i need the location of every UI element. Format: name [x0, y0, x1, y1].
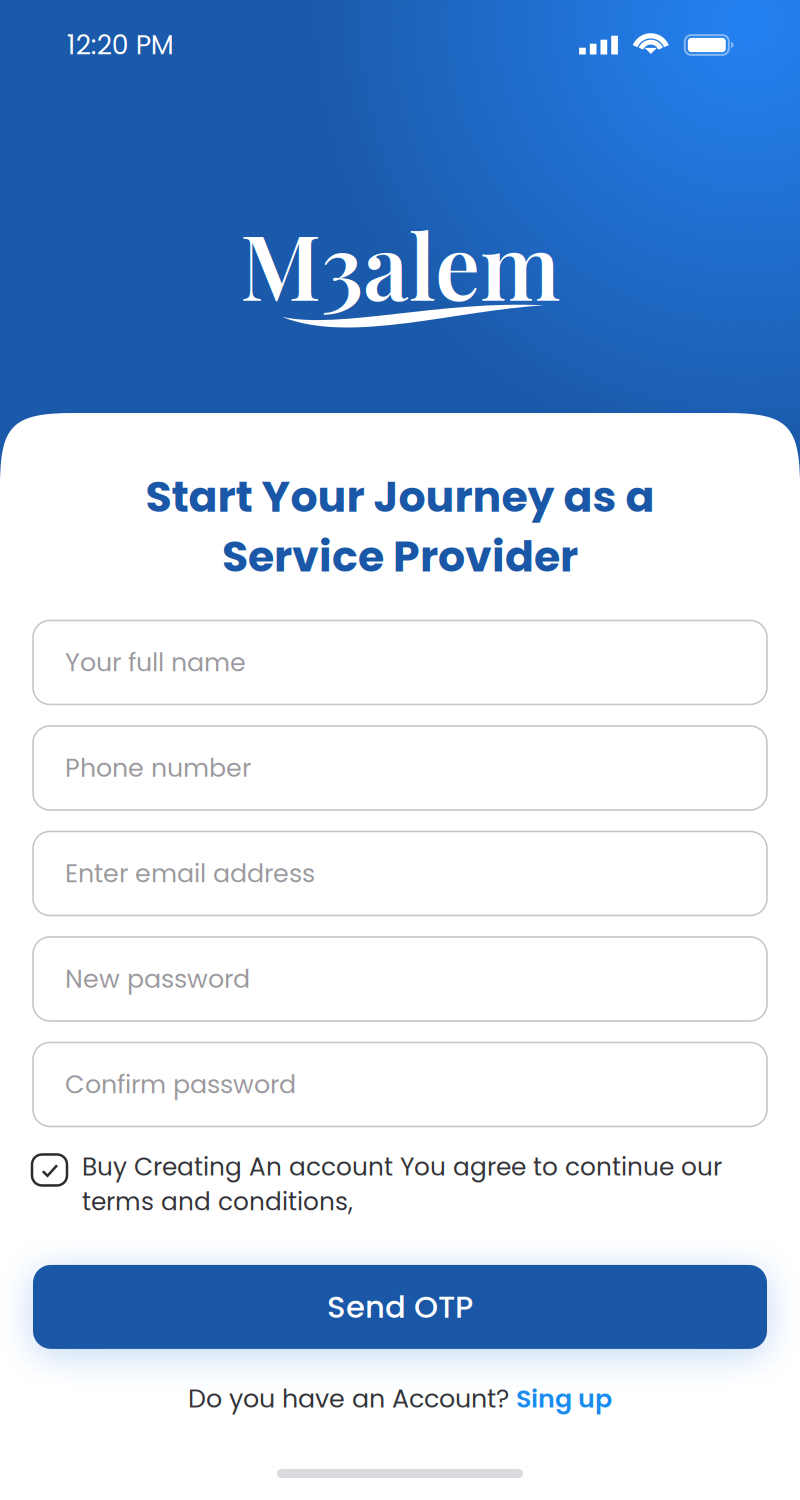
staticText: Enter email address [65, 856, 315, 891]
staticText: New password [65, 961, 250, 997]
button[interactable]: Phone number [33, 726, 767, 810]
staticText: Buy Creating An account You agree to con… [82, 1149, 722, 1219]
staticText: Phone number [65, 750, 251, 786]
button[interactable]: Sing up [516, 1381, 612, 1416]
staticText: Start Your Journey as a [145, 467, 654, 527]
button[interactable]: Buy Creating An account You agree to con… [0, 1149, 800, 1219]
staticText: Confirm password [65, 1067, 296, 1102]
staticText: 12:20 PM [67, 26, 174, 64]
staticText: M3alem [240, 204, 560, 323]
button[interactable]: New password [33, 937, 767, 1021]
staticText: Service Provider [222, 527, 578, 586]
button[interactable]: Your full name [33, 620, 767, 704]
button[interactable]: Confirm password [33, 1042, 767, 1126]
staticText: Sing up [516, 1381, 612, 1416]
staticText: Your full name [65, 645, 246, 680]
button[interactable]: Send OTP [0, 1265, 800, 1349]
staticText: Send OTP [327, 1285, 473, 1328]
button[interactable]: Enter email address [33, 831, 767, 915]
staticText: Do you have an Account? [188, 1381, 516, 1416]
